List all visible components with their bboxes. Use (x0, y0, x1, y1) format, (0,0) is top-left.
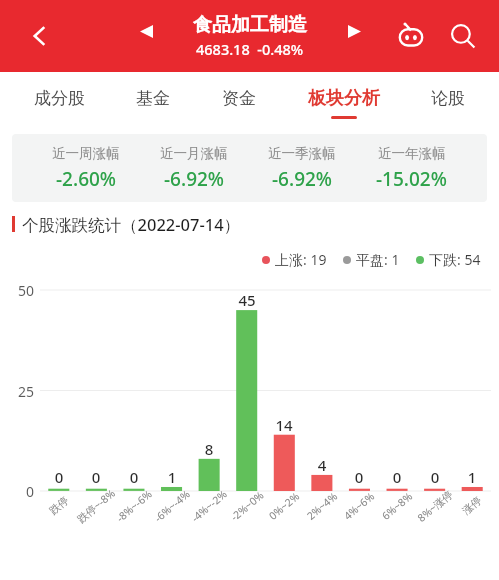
staticText: 板块分析 (308, 87, 380, 110)
staticText: -15.02% (376, 166, 447, 192)
staticText: 个股涨跌统计（2022-07-14） (22, 213, 241, 236)
staticText: -2%~0% (216, 479, 278, 533)
staticText: 近一周涨幅 (52, 145, 120, 162)
staticText: 25 (4, 382, 34, 401)
staticText: 0 (415, 467, 455, 487)
button[interactable]: 基金 (136, 72, 170, 134)
staticText: -6.92% (164, 166, 225, 192)
staticText: 4%~6% (328, 479, 390, 533)
staticText: 4 (302, 455, 342, 475)
staticText: 近一月涨幅 (160, 145, 228, 162)
staticText: 上涨: 19 (275, 250, 327, 269)
button[interactable]: 资金 (222, 72, 256, 134)
staticText: 食品加工制造 (193, 13, 307, 37)
button[interactable]: AI assistant (391, 16, 431, 56)
staticText: 涨停 (442, 479, 499, 532)
staticText: 0 (39, 467, 79, 487)
button[interactable]: 近一周涨幅 (12, 134, 487, 202)
button[interactable]: Previous sector (133, 18, 159, 44)
staticText: 跌停~-8% (65, 479, 127, 533)
staticText: 50 (4, 281, 34, 300)
staticText: -8%~-6% (103, 479, 165, 533)
staticText: 近一年涨幅 (378, 145, 446, 162)
staticText: 0%~2% (253, 479, 315, 533)
staticText: 资金 (222, 88, 256, 109)
staticText: 0 (76, 467, 116, 487)
staticText: -6%~-4% (141, 479, 203, 533)
staticText: 0 (114, 467, 154, 487)
staticText: 1 (452, 467, 492, 487)
staticText: 14 (264, 415, 304, 435)
staticText: 4683.18 -0.48% (196, 39, 304, 59)
button[interactable]: 成分股 (34, 72, 85, 134)
button[interactable]: 板块分析 (308, 72, 380, 134)
staticText: 0 (4, 482, 34, 501)
staticText: 8%~涨停 (404, 479, 466, 533)
staticText: 下跌: 54 (429, 250, 481, 269)
staticText: 成分股 (34, 88, 85, 109)
staticText: 0 (377, 467, 417, 487)
staticText: 0 (339, 467, 379, 487)
button[interactable]: Search (443, 16, 483, 56)
staticText: 论股 (431, 88, 465, 109)
staticText: 近一季涨幅 (268, 145, 336, 162)
button[interactable]: 论股 (431, 72, 465, 134)
button[interactable]: Next sector (341, 18, 367, 44)
staticText: -4%~-2% (178, 479, 240, 533)
staticText: 基金 (136, 88, 170, 109)
button[interactable]: Back (20, 16, 60, 56)
staticText: 45 (227, 290, 267, 310)
staticText: 6%~8% (366, 479, 428, 533)
staticText: 1 (152, 467, 192, 487)
staticText: 8 (189, 439, 229, 459)
staticText: 跌停 (29, 479, 89, 532)
staticText: 2%~4% (291, 479, 353, 533)
staticText: -2.60% (56, 166, 117, 192)
staticText: -6.92% (272, 166, 333, 192)
staticText: 平盘: 1 (356, 250, 400, 269)
